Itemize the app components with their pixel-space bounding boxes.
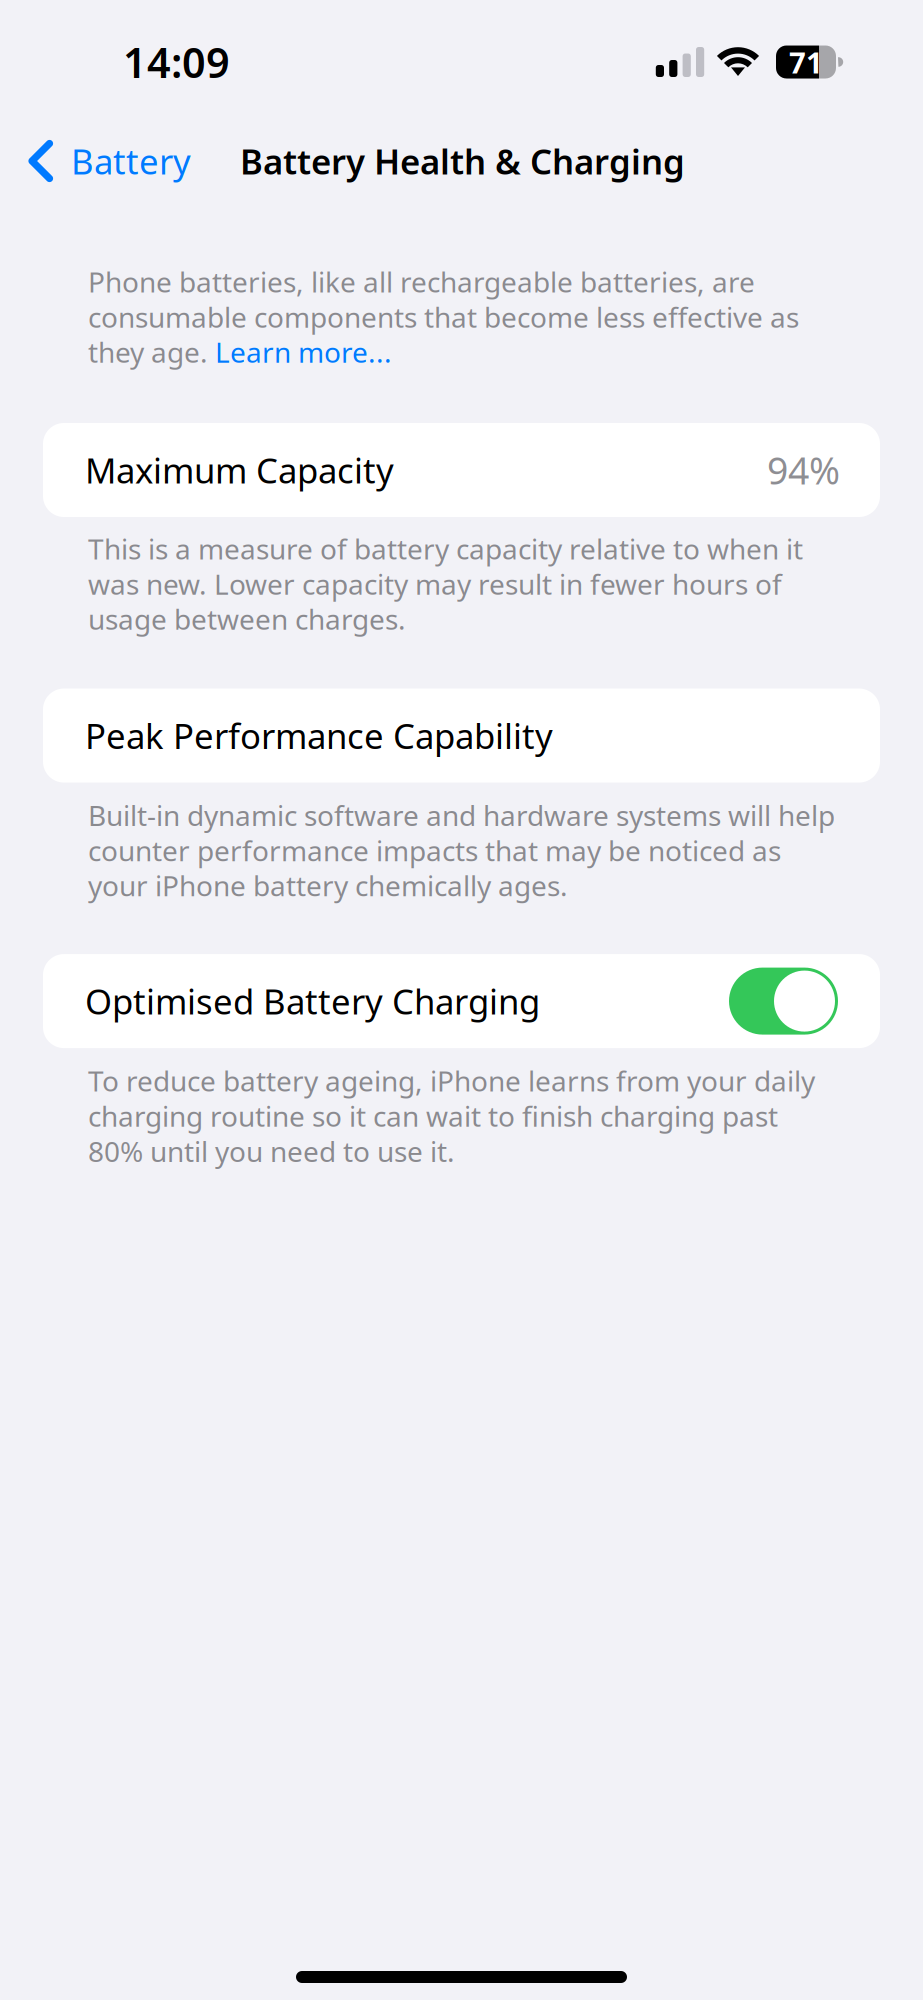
- staticText: Maximum Capacity: [85, 447, 394, 493]
- staticText: Learn more...: [215, 333, 392, 371]
- staticText: Built-in dynamic software and hardware s…: [88, 796, 835, 904]
- button[interactable]: Learn more...: [215, 333, 392, 371]
- button[interactable]: Battery: [0, 130, 205, 192]
- staticText: This is a measure of battery capacity re…: [88, 530, 803, 637]
- staticText: Optimised Battery Charging: [85, 978, 540, 1024]
- button[interactable]: Optimised Battery Charging, on: [729, 968, 838, 1035]
- staticText: Battery Health & Charging: [240, 138, 685, 184]
- staticText: 94%: [767, 445, 840, 495]
- staticText: To reduce battery ageing, iPhone learns …: [88, 1062, 815, 1170]
- staticText: Battery: [71, 138, 191, 184]
- staticText: 14:09: [123, 35, 230, 89]
- button[interactable]: Maximum Capacity: [43, 423, 880, 517]
- staticText: they age.: [88, 333, 215, 371]
- staticText: Phone batteries, like all rechargeable b…: [88, 263, 799, 335]
- button[interactable]: Optimised Battery Charging: [43, 954, 880, 1048]
- staticText: Peak Performance Capability: [85, 712, 553, 758]
- staticText: 71: [789, 42, 823, 81]
- button[interactable]: Peak Performance Capability: [43, 688, 880, 782]
